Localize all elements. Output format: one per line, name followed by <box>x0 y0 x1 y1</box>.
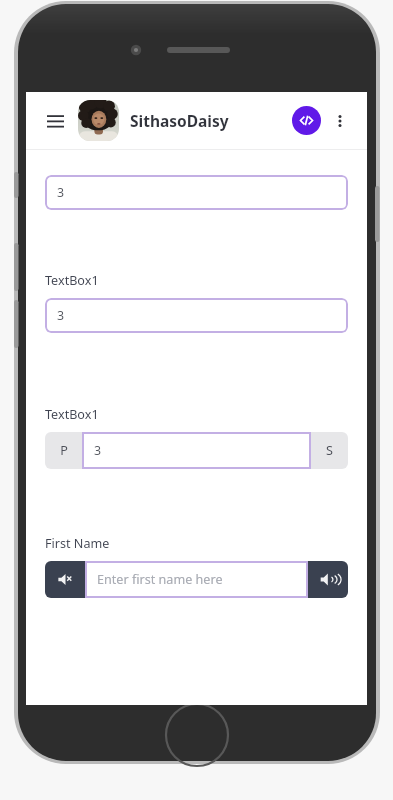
button[interactable]: More options <box>325 106 355 136</box>
button[interactable]: Profile <box>78 100 119 141</box>
staticText: TextBox1 <box>45 406 99 423</box>
staticText: 3 <box>94 442 102 459</box>
button[interactable]: S <box>311 432 348 469</box>
staticText: 3 <box>57 184 65 201</box>
button[interactable]: 3 <box>82 432 311 469</box>
button[interactable]: P <box>45 432 82 469</box>
staticText: First Name <box>45 535 110 552</box>
button[interactable]: Enter first name here <box>85 561 308 598</box>
staticText: P <box>60 442 68 459</box>
staticText: Enter first name here <box>97 571 223 588</box>
staticText: TextBox1 <box>45 272 99 289</box>
button[interactable]: Mute <box>45 561 85 598</box>
staticText: S <box>326 442 333 459</box>
button[interactable]: Menu <box>38 104 72 138</box>
staticText: SithasoDaisy <box>130 110 229 131</box>
button[interactable]: Volume on <box>308 561 348 598</box>
button[interactable]: 3 <box>45 298 348 333</box>
staticText: 3 <box>57 307 65 324</box>
button[interactable]: 3 <box>45 175 348 210</box>
button[interactable]: Code <box>292 106 321 135</box>
